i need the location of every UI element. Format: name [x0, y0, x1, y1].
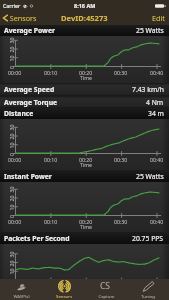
- staticText: 00:00: [8, 69, 22, 76]
- button[interactable]: Tuning: [127, 279, 169, 300]
- staticText: 20: [7, 195, 14, 201]
- staticText: DevID:45273: [61, 13, 108, 23]
- staticText: 4 Nm: [146, 98, 164, 107]
- button[interactable]: WASP(s): [0, 279, 43, 300]
- staticText: Packets Per Second: [4, 234, 70, 243]
- staticText: Time: [80, 74, 92, 81]
- staticText: 7.43 km/h: [132, 85, 164, 94]
- staticText: 10: [7, 204, 14, 210]
- staticText: 00:00: [8, 282, 22, 289]
- staticText: Distance: [4, 109, 34, 118]
- staticText: 00:40: [150, 282, 164, 289]
- staticText: 0: [8, 215, 15, 218]
- button[interactable]: Edit: [0, 11, 169, 25]
- staticText: WASP(s): [13, 293, 30, 299]
- staticText: 00:40: [150, 69, 164, 76]
- staticText: 00:20: [79, 69, 93, 76]
- staticText: 00:30: [114, 69, 128, 76]
- staticText: 20: [7, 46, 14, 52]
- staticText: 34 m: [148, 109, 164, 118]
- staticText: Carrier: [3, 2, 21, 9]
- staticText: Average Power: [4, 26, 55, 35]
- staticText: 00:40: [150, 156, 164, 163]
- staticText: 30: [7, 37, 14, 43]
- staticText: Average Torque: [4, 98, 58, 107]
- button[interactable]: Average Torque: [0, 96, 169, 108]
- staticText: 10: [7, 55, 14, 61]
- staticText: Time: [80, 223, 92, 230]
- staticText: Sensors: [8, 13, 37, 23]
- staticText: 00:20: [79, 156, 93, 163]
- staticText: Edit: [152, 13, 165, 23]
- staticText: 00:30: [114, 218, 128, 225]
- staticText: 25 Watts: [136, 172, 164, 181]
- staticText: 30: [7, 124, 14, 130]
- staticText: 30: [7, 251, 14, 257]
- staticText: 8:16 AM: [74, 2, 96, 9]
- staticText: 10: [7, 268, 14, 274]
- button[interactable]: Average Speed: [0, 83, 169, 96]
- staticText: 00:10: [44, 69, 58, 76]
- button[interactable]: Capture: [85, 279, 127, 300]
- staticText: CSV: [100, 280, 113, 293]
- staticText: 0: [8, 66, 15, 69]
- staticText: Sensors: [56, 293, 72, 299]
- staticText: 25 Watts: [136, 26, 164, 35]
- staticText: Capture: [98, 293, 115, 299]
- button[interactable]: Sensors: [0, 11, 169, 25]
- staticText: 00:10: [44, 218, 58, 225]
- staticText: Time: [80, 161, 92, 168]
- staticText: 10: [7, 142, 14, 148]
- staticText: 00:00: [8, 156, 22, 163]
- staticText: Instant Power: [4, 172, 52, 181]
- staticText: 20: [7, 260, 14, 266]
- staticText: 30: [7, 186, 14, 192]
- staticText: 0: [8, 153, 15, 156]
- button[interactable]: Sensors: [43, 279, 85, 300]
- staticText: 20.75 PPS: [132, 234, 164, 243]
- button[interactable]: Average Power: [0, 25, 169, 36]
- staticText: Tuning: [141, 293, 155, 299]
- staticText: Average Speed: [4, 85, 55, 94]
- staticText: 00:30: [114, 156, 128, 163]
- staticText: 00:20: [79, 218, 93, 225]
- button[interactable]: Distance: [0, 108, 169, 119]
- staticText: 20: [7, 133, 14, 139]
- button[interactable]: Instant Power: [0, 170, 169, 182]
- staticText: 00:00: [8, 218, 22, 225]
- button[interactable]: Packets Per Second: [0, 232, 169, 244]
- staticText: 00:10: [44, 156, 58, 163]
- staticText: 00:40: [150, 218, 164, 225]
